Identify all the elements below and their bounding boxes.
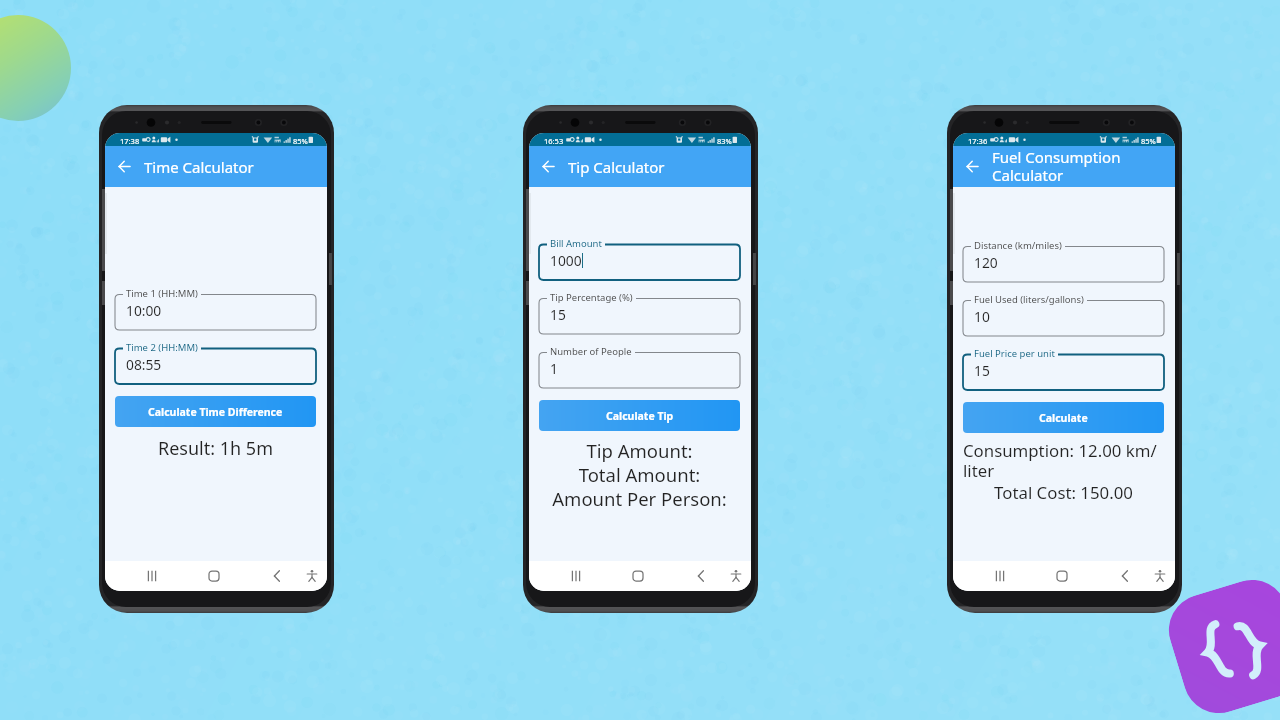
button[interactable]: Home bbox=[202, 561, 226, 591]
staticText: 85% bbox=[293, 136, 308, 146]
button[interactable]: Recents bbox=[988, 561, 1012, 591]
staticText: Time Calculator bbox=[144, 157, 254, 177]
staticText: 1000 bbox=[550, 251, 582, 270]
staticText: Fuel Price per unit bbox=[974, 347, 1055, 360]
staticText: Total Cost: 150.00 bbox=[963, 481, 1164, 504]
staticText: 120 bbox=[974, 253, 998, 272]
button[interactable]: Back bbox=[1113, 561, 1137, 591]
button[interactable]: Back bbox=[536, 146, 560, 187]
staticText: Bill Amount bbox=[550, 237, 602, 250]
staticText: 1 bbox=[550, 359, 558, 378]
staticText: Tip Percentage (%) bbox=[550, 291, 633, 304]
button[interactable]: Accessibility bbox=[1148, 561, 1172, 591]
staticText: Fuel Consumption Calculator bbox=[992, 147, 1121, 186]
button[interactable]: Recents bbox=[564, 561, 588, 591]
staticText: Result: 1h 5m bbox=[115, 436, 316, 461]
button[interactable]: Back bbox=[960, 146, 984, 187]
button[interactable]: Back bbox=[689, 561, 713, 591]
staticText: 08:55 bbox=[126, 355, 162, 374]
staticText: 16:53 bbox=[544, 136, 564, 146]
button[interactable]: Calculate Time Difference bbox=[115, 396, 316, 427]
button[interactable]: Accessibility bbox=[724, 561, 748, 591]
staticText: Calculate bbox=[1039, 411, 1088, 425]
staticText: 10 bbox=[974, 307, 990, 326]
staticText: Calculate Tip bbox=[606, 409, 674, 423]
button[interactable]: Accessibility bbox=[300, 561, 324, 591]
staticText: 85% bbox=[1141, 136, 1156, 146]
button[interactable]: Home bbox=[626, 561, 650, 591]
button[interactable]: Back bbox=[265, 561, 289, 591]
button[interactable]: Back bbox=[112, 146, 136, 187]
staticText: Number of People bbox=[550, 345, 632, 358]
staticText: 17:38 bbox=[120, 136, 140, 146]
staticText: 10:00 bbox=[126, 301, 162, 320]
button[interactable]: Home bbox=[1050, 561, 1074, 591]
staticText: Tip Calculator bbox=[568, 157, 665, 177]
staticText: Fuel Used (liters/gallons) bbox=[974, 293, 1084, 306]
staticText: 17:36 bbox=[968, 136, 988, 146]
button[interactable]: Calculate Tip bbox=[539, 400, 740, 431]
staticText: Consumption: 12.00 km/liter bbox=[963, 439, 1164, 481]
staticText: Time 1 (HH:MM) bbox=[126, 287, 198, 300]
staticText: 15 bbox=[974, 361, 990, 380]
staticText: Distance (km/miles) bbox=[974, 239, 1062, 252]
staticText: Tip Amount: Total Amount: Amount Per Per… bbox=[539, 438, 740, 511]
staticText: 83% bbox=[717, 136, 732, 146]
staticText: Time 2 (HH:MM) bbox=[126, 341, 198, 354]
button[interactable]: Recents bbox=[140, 561, 164, 591]
staticText: Calculate Time Difference bbox=[148, 405, 283, 419]
button[interactable]: Calculate bbox=[963, 402, 1164, 433]
staticText: 15 bbox=[550, 305, 566, 324]
